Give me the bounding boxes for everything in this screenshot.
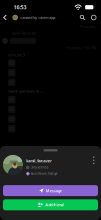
staticText: kamilteam.frcst.xyz <box>31 172 57 176</box>
button[interactable]: More options <box>90 155 97 167</box>
button[interactable]: Add friend <box>3 199 98 210</box>
staticText: Yesterday 1:30 PM <box>66 46 96 50</box>
staticText: kamil_farcaster <box>26 158 52 163</box>
staticText: asha_bot_9 <box>8 53 25 57</box>
staticText: Yesterday <box>80 24 96 29</box>
staticText: created by canim app <box>20 15 55 20</box>
button[interactable]: Back <box>0 12 12 22</box>
staticText: 16:53 <box>13 4 26 11</box>
staticText: kamil_farcaster <box>12 31 36 35</box>
staticText: Quick questions to ... <box>8 88 43 94</box>
button[interactable]: Explore <box>88 12 101 22</box>
button[interactable]: Message <box>3 185 98 196</box>
staticText: Add friend <box>45 202 63 207</box>
staticText: Message <box>46 188 62 193</box>
button[interactable]: Search <box>77 12 88 22</box>
staticText: Only verified <box>31 166 49 169</box>
